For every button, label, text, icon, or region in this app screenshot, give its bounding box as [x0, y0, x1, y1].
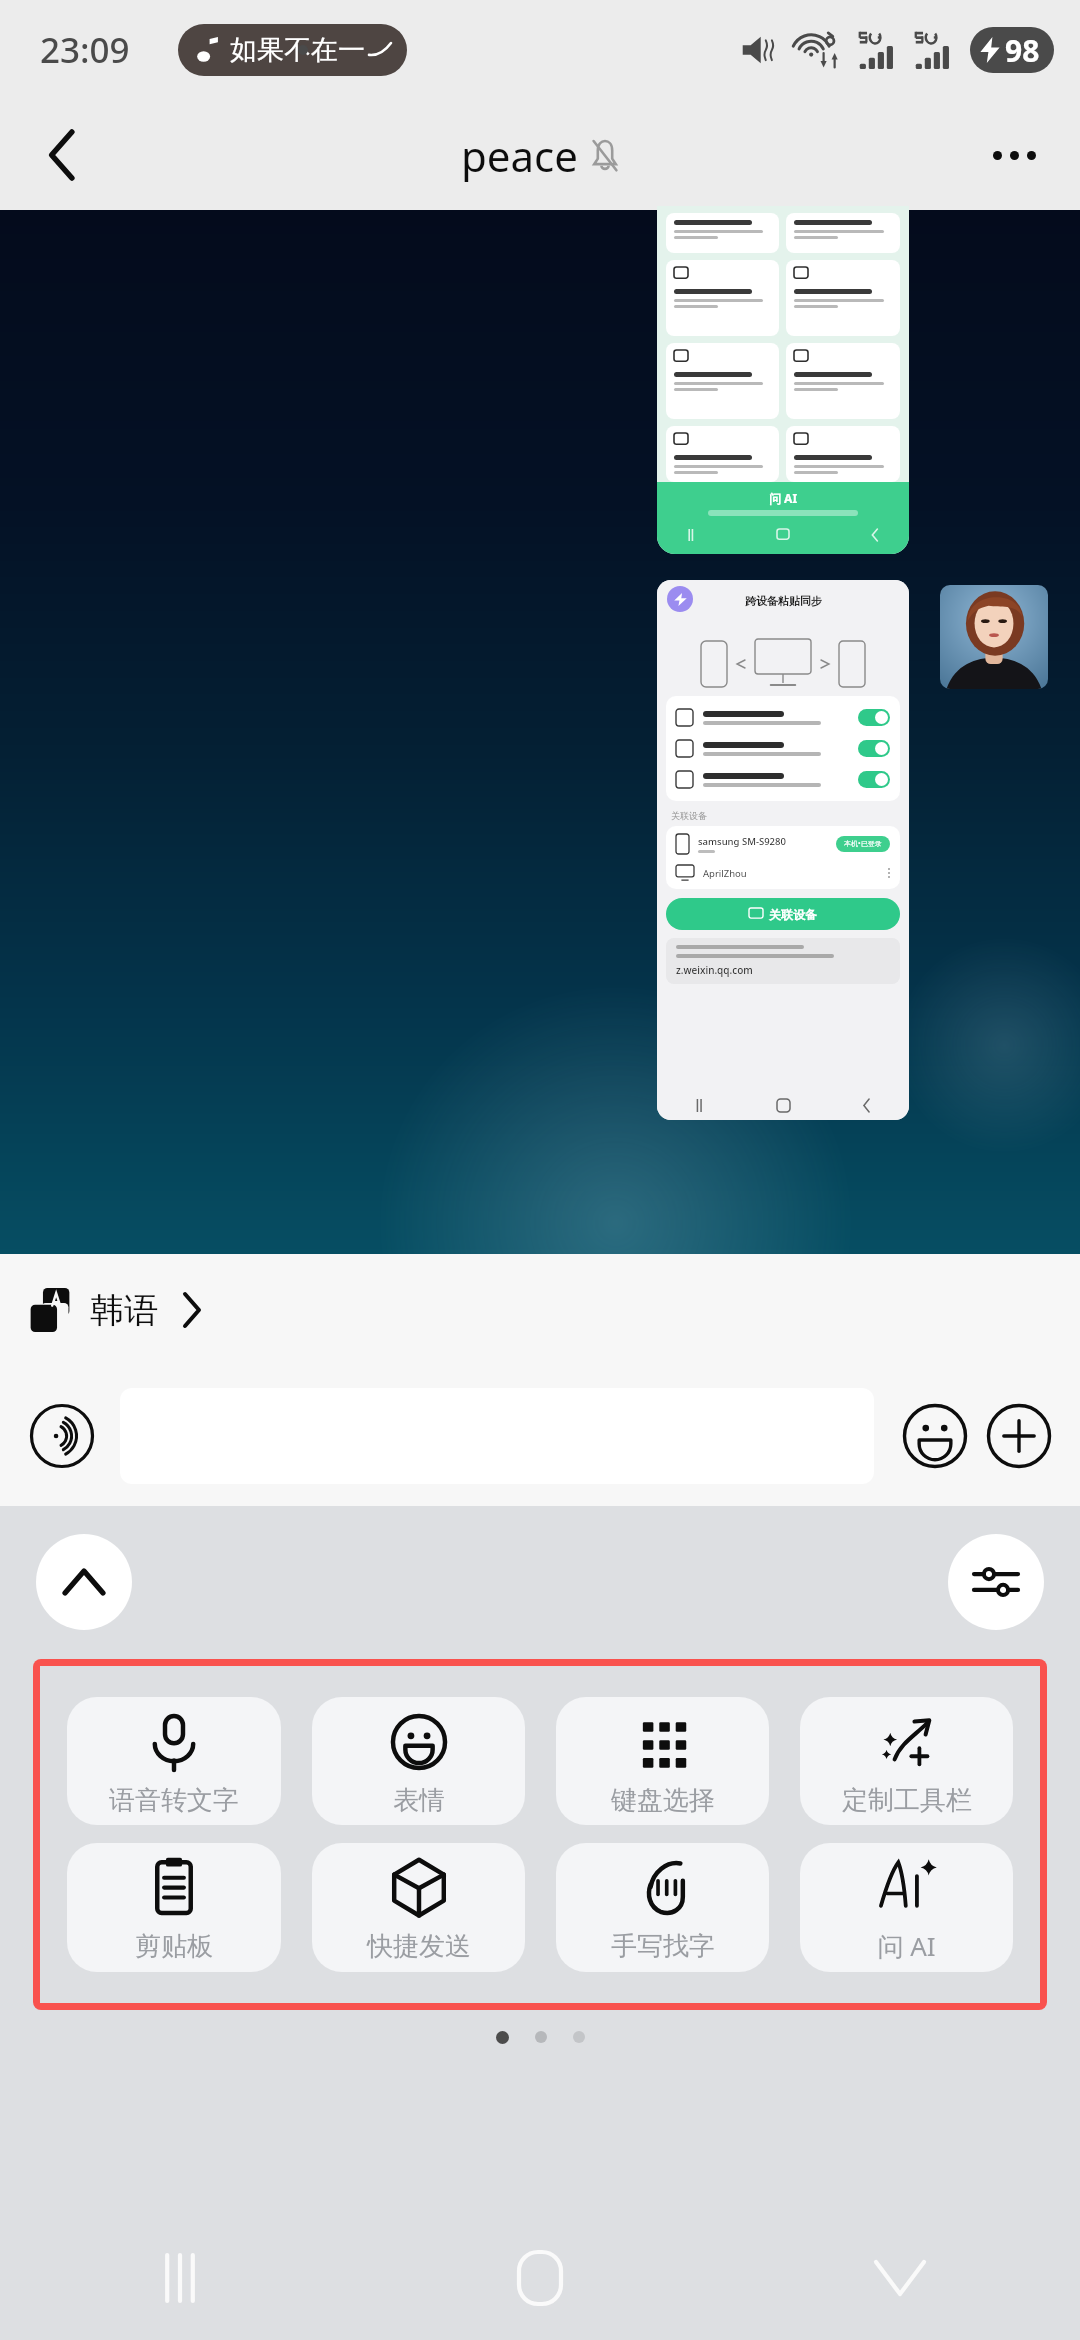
staticText: z.weixin.qq.com — [676, 963, 753, 977]
staticText: peace — [461, 127, 578, 184]
staticText: 问 AI — [769, 490, 798, 506]
button[interactable]: 问 AI — [800, 1843, 1013, 1972]
button[interactable]: Back — [22, 115, 102, 195]
staticText: 关联设备 — [671, 810, 707, 821]
button[interactable]: Screenshot message — [657, 206, 909, 554]
staticText: 手写找字 — [611, 1930, 715, 1963]
staticText: 定制工具栏 — [842, 1784, 972, 1817]
staticText: samsung SM-S9280 — [698, 835, 786, 848]
button[interactable]: Home — [360, 2216, 720, 2340]
button[interactable]: 剪贴板 — [67, 1843, 281, 1972]
staticText: 本机•已登录 — [844, 839, 882, 849]
staticText: 问 AI — [877, 1928, 936, 1964]
button[interactable]: Sender avatar — [940, 585, 1048, 689]
staticText: 表情 — [393, 1784, 445, 1817]
button[interactable]: 快捷发送 — [312, 1843, 525, 1972]
staticText: 98 — [1005, 30, 1040, 71]
staticText: 键盘选择 — [611, 1784, 715, 1817]
button[interactable]: 手写找字 — [556, 1843, 769, 1972]
button[interactable]: 文 — [0, 1254, 1080, 1366]
staticText: 跨设备粘贴同步 — [745, 594, 822, 608]
staticText: AprilZhou — [703, 867, 888, 880]
staticText: 剪贴板 — [135, 1930, 213, 1963]
staticText: 语音转文字 — [109, 1784, 239, 1817]
staticText: 关联设备 — [769, 907, 817, 922]
button[interactable]: 定制工具栏 — [800, 1697, 1013, 1825]
button[interactable]: Screenshot message — [657, 580, 909, 1120]
button[interactable]: Emoji — [896, 1397, 974, 1475]
button[interactable]: More options — [972, 113, 1056, 197]
button[interactable]: Recent apps — [0, 2216, 360, 2340]
button[interactable]: 表情 — [312, 1697, 525, 1825]
button[interactable]: 键盘选择 — [556, 1697, 769, 1825]
button[interactable]: Collapse panel — [36, 1534, 132, 1630]
button[interactable]: 语音转文字 — [67, 1697, 281, 1825]
staticText: 韩语 — [90, 1289, 158, 1332]
staticText: 如果不在一 — [230, 33, 365, 67]
button[interactable]: Voice input — [26, 1400, 98, 1472]
button[interactable]: More functions — [980, 1397, 1058, 1475]
staticText: 23:09 — [40, 26, 130, 74]
staticText: 快捷发送 — [367, 1930, 471, 1963]
button[interactable]: Toolbar settings — [948, 1534, 1044, 1630]
